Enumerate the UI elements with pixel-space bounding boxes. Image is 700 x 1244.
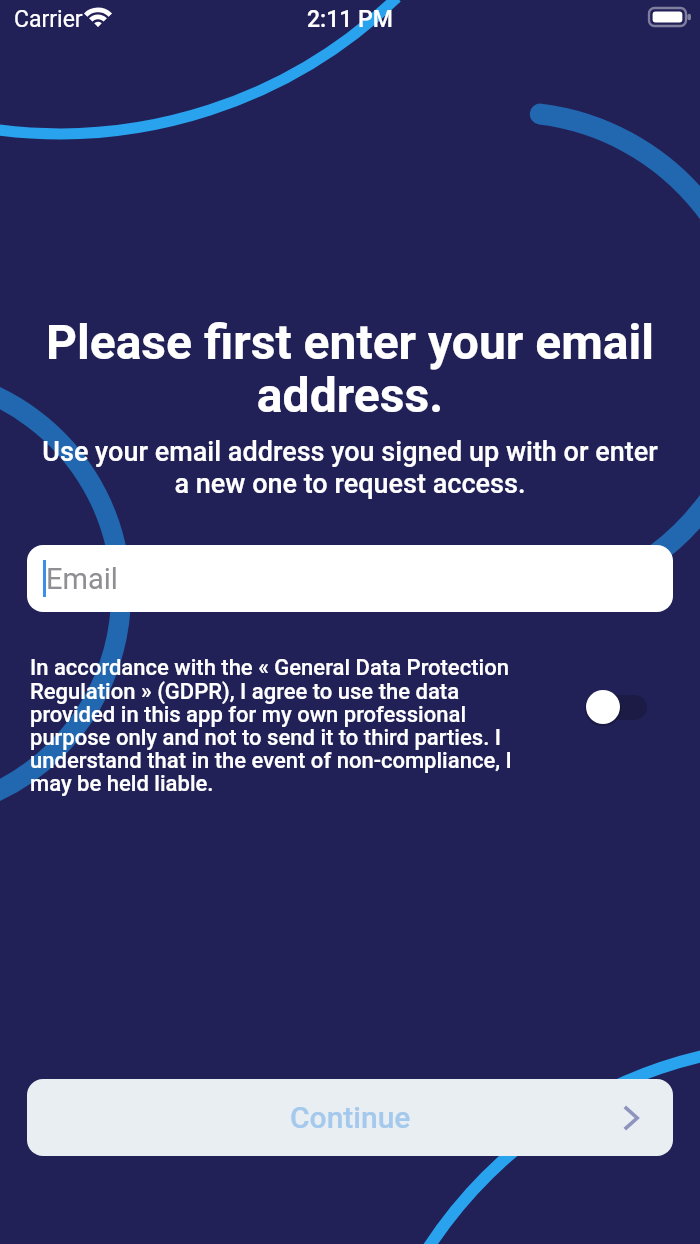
button[interactable]: Email — [27, 545, 673, 612]
staticText: Use your email address you signed up wit… — [36, 436, 664, 499]
button[interactable]: Continue — [27, 1079, 673, 1156]
button[interactable]: GDPR consent toggle — [586, 690, 647, 724]
staticText: Email — [46, 562, 118, 596]
staticText: In accordance with the « General Data Pr… — [30, 655, 520, 796]
staticText: Please first enter your email address. — [18, 314, 682, 424]
staticText: Continue — [290, 1100, 411, 1135]
staticText: Carrier — [14, 6, 83, 33]
staticText: 2:11 PM — [307, 6, 393, 33]
